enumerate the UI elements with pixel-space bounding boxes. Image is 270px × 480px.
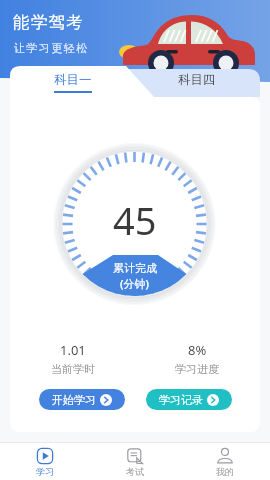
button[interactable]: 开始学习 bbox=[39, 389, 125, 410]
staticText: 科目一 bbox=[54, 72, 92, 88]
staticText: (分钟) bbox=[120, 276, 149, 291]
button[interactable]: 科目一 bbox=[44, 72, 102, 98]
other: 学习 bbox=[36, 447, 54, 465]
staticText: 1.01 bbox=[60, 341, 86, 359]
button[interactable]: 考试 bbox=[90, 443, 180, 480]
staticText: 考试 bbox=[126, 466, 144, 477]
staticText: 累计完成 bbox=[113, 261, 157, 275]
staticText: 让学习更轻松 bbox=[13, 41, 88, 55]
staticText: 8% bbox=[188, 341, 207, 359]
button[interactable]: 学习 bbox=[0, 443, 90, 480]
staticText: 学习记录 bbox=[159, 393, 203, 407]
staticText: 我的 bbox=[216, 466, 234, 477]
staticText: 当前学时 bbox=[51, 362, 95, 376]
staticText: 学习进度 bbox=[175, 362, 219, 376]
other: 考试 bbox=[126, 447, 144, 465]
staticText: 学习 bbox=[36, 466, 54, 477]
staticText: 能学驾考 bbox=[13, 12, 84, 33]
button[interactable]: 学习记录 bbox=[146, 389, 232, 410]
other: 我的 bbox=[216, 447, 234, 465]
button[interactable]: 科目四 bbox=[168, 72, 226, 98]
staticText: 开始学习 bbox=[52, 393, 96, 407]
staticText: 科目四 bbox=[178, 72, 216, 88]
staticText: 45 bbox=[113, 194, 157, 242]
button[interactable]: 我的 bbox=[180, 443, 270, 480]
